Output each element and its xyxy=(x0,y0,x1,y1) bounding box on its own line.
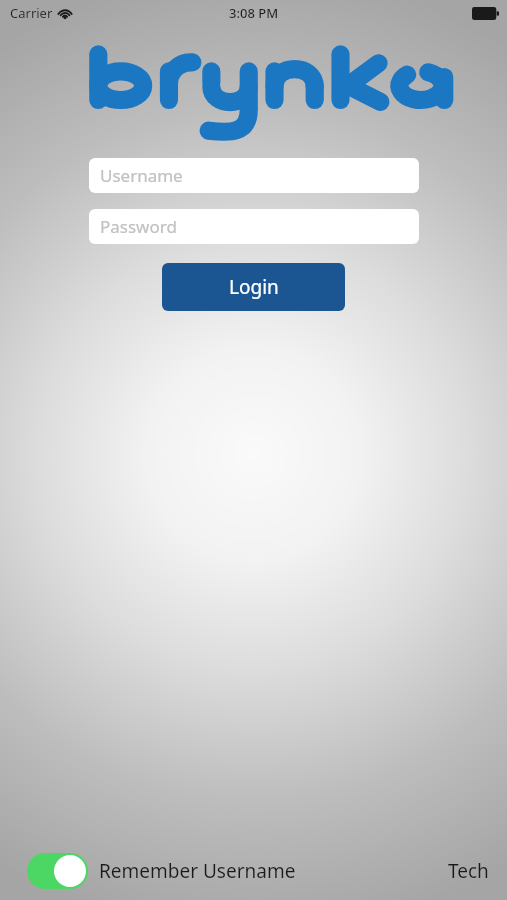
staticText: Login xyxy=(229,274,279,300)
button[interactable]: Remember Username toggle, on xyxy=(27,853,88,889)
button[interactable]: Login xyxy=(162,263,345,311)
staticText: Tech xyxy=(448,858,489,884)
staticText: Password xyxy=(100,215,177,238)
staticText: Remember Username xyxy=(99,858,296,884)
button[interactable]: Username xyxy=(89,158,419,193)
button[interactable]: Password xyxy=(89,209,419,244)
staticText: 3:08 PM xyxy=(229,4,279,22)
staticText: Username xyxy=(100,164,183,187)
button[interactable]: Tech xyxy=(448,858,489,884)
staticText: Carrier xyxy=(10,4,53,22)
